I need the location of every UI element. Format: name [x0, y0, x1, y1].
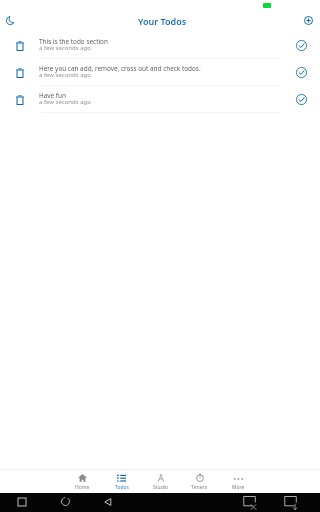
button[interactable]: Delete todo	[12, 38, 28, 54]
button[interactable]: Todos	[102, 471, 141, 493]
staticText: More	[232, 484, 245, 491]
staticText: Todos	[115, 484, 129, 491]
button[interactable]: Timers	[180, 471, 219, 493]
staticText: a few seconds ago	[39, 44, 91, 52]
button[interactable]: Recents	[13, 493, 30, 510]
button[interactable]: Toggle dark mode	[2, 12, 19, 29]
button[interactable]: Home	[57, 493, 74, 510]
button[interactable]: Home	[63, 471, 102, 493]
button[interactable]: Delete todo	[12, 65, 28, 81]
staticText: Here you can add, remove, cross out and …	[39, 64, 201, 73]
button[interactable]: Mark todo done	[293, 64, 309, 80]
button[interactable]: Studio	[141, 471, 180, 493]
button[interactable]: Mark todo done	[293, 37, 309, 53]
staticText: Home	[75, 484, 90, 491]
button[interactable]: Screenshot	[242, 494, 258, 510]
button[interactable]: Back	[99, 493, 116, 510]
button[interactable]: Delete todo	[0, 32, 320, 59]
staticText: a few seconds ago	[39, 71, 91, 79]
staticText: a few seconds ago	[39, 98, 91, 106]
staticText: Timers	[191, 484, 208, 491]
staticText: Studio	[153, 484, 169, 491]
button[interactable]: Screen record	[283, 494, 299, 510]
button[interactable]: Delete todo	[12, 92, 28, 108]
button[interactable]: Delete todo	[0, 86, 320, 113]
button[interactable]: More	[219, 471, 258, 493]
button[interactable]: Mark todo done	[293, 91, 309, 107]
button[interactable]: Delete todo	[0, 59, 320, 86]
button[interactable]: Add todo	[300, 12, 317, 29]
staticText: Have fun	[39, 91, 66, 100]
staticText: Your Todos	[138, 15, 187, 27]
staticText: This is the todo section	[39, 37, 108, 46]
